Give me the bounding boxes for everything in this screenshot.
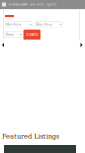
staticText: Beds bbox=[6, 33, 14, 37]
staticText: Search bbox=[26, 32, 38, 37]
staticText: ▾ bbox=[20, 33, 21, 36]
staticText: Buy bbox=[30, 3, 35, 6]
button[interactable]: Beds bbox=[5, 31, 22, 38]
button[interactable]: Company Name bbox=[8, 3, 28, 6]
button[interactable]: For sale bbox=[0, 15, 14, 17]
staticText: Company Name bbox=[8, 3, 28, 6]
button[interactable]: Rent bbox=[37, 3, 44, 6]
button[interactable]: Min Price bbox=[5, 21, 32, 28]
staticText: Featured Listings bbox=[2, 133, 59, 140]
button[interactable]: Home bbox=[2, 2, 6, 6]
staticText: Min Price bbox=[6, 23, 21, 26]
staticText: ▾ bbox=[30, 23, 31, 26]
staticText: Rent bbox=[37, 3, 44, 6]
button[interactable]: Previous bbox=[1, 41, 5, 48]
button[interactable]: Search bbox=[23, 30, 40, 40]
staticText: Agents bbox=[46, 3, 56, 6]
staticText: Max Price bbox=[36, 23, 52, 26]
button[interactable]: Max Price bbox=[35, 21, 62, 28]
button[interactable]: Buy bbox=[30, 3, 35, 6]
staticText: ▾ bbox=[60, 23, 61, 26]
button[interactable]: Agents bbox=[46, 3, 56, 6]
button[interactable]: Next bbox=[79, 41, 83, 48]
